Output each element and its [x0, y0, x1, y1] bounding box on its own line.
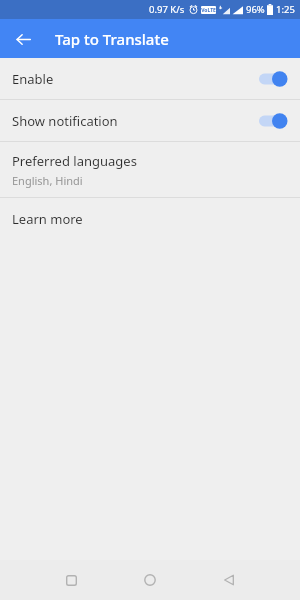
- staticText: 1:25: [276, 3, 295, 16]
- staticText: Tap to Translate: [55, 29, 169, 49]
- button[interactable]: Show notification: [0, 100, 300, 141]
- staticText: Enable: [12, 70, 258, 88]
- button[interactable]: Navigate up: [8, 24, 38, 54]
- button[interactable]: Toggle: [258, 112, 288, 130]
- button[interactable]: Enable: [0, 58, 300, 99]
- button[interactable]: Learn more: [0, 198, 300, 240]
- staticText: Preferred languages: [12, 152, 137, 170]
- button[interactable]: Back: [212, 563, 246, 597]
- staticText: VoLTE: [201, 7, 216, 14]
- staticText: 0.97 K/s: [149, 3, 185, 16]
- button[interactable]: Home: [133, 563, 167, 597]
- button[interactable]: Toggle: [258, 70, 288, 88]
- staticText: English, Hindi: [12, 173, 83, 188]
- button[interactable]: Preferred languages: [0, 142, 300, 197]
- button[interactable]: Recents: [54, 563, 88, 597]
- staticText: 96%: [246, 3, 265, 16]
- staticText: Show notification: [12, 112, 258, 130]
- staticText: Learn more: [12, 210, 83, 228]
